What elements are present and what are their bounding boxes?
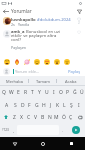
button[interactable]: Ş [68, 99, 75, 111]
button[interactable]: Backspace [74, 111, 85, 123]
staticText: P [66, 89, 70, 96]
button[interactable]: Ü [78, 86, 85, 99]
button[interactable]: amk_a [0, 29, 85, 53]
staticText: K [56, 102, 60, 109]
staticText: S [14, 102, 17, 109]
staticText: Yorumlar [11, 8, 32, 15]
button[interactable]: C [25, 111, 32, 123]
staticText: A [5, 102, 9, 109]
button[interactable]: Shift [0, 111, 11, 123]
button[interactable]: Ç [67, 111, 74, 123]
staticText: X [20, 114, 23, 121]
button[interactable]: R [22, 86, 29, 99]
button[interactable]: React [62, 57, 72, 66]
button[interactable]: B [39, 111, 46, 123]
staticText: I [53, 89, 55, 96]
button[interactable]: Yorum ekle... [13, 66, 67, 76]
button[interactable]: M [53, 111, 60, 123]
staticText: J [50, 102, 52, 109]
button[interactable]: React [22, 57, 32, 66]
button[interactable]: Ğ [71, 86, 78, 99]
staticText: Paylaşım [11, 45, 26, 50]
staticText: . [62, 128, 64, 133]
button[interactable]: G [33, 99, 40, 111]
staticText: Merhaba [6, 79, 23, 84]
staticText: V [34, 114, 38, 121]
staticText: Q [2, 89, 6, 96]
staticText: Yorum ekle... [15, 69, 40, 74]
button[interactable]: T [29, 86, 36, 99]
staticText: M [54, 114, 59, 121]
button[interactable]: J [47, 99, 54, 111]
button[interactable]: Send [67, 123, 85, 137]
button[interactable]: K [54, 99, 61, 111]
button[interactable]: Filter [73, 6, 85, 16]
button[interactable]: Q [0, 86, 8, 99]
button[interactable]: H [40, 99, 47, 111]
button[interactable]: React [42, 57, 52, 66]
staticText: #dolukdum-2024 [37, 17, 71, 23]
button[interactable]: D [19, 99, 26, 111]
button[interactable]: React [32, 57, 42, 66]
button[interactable]: React [12, 57, 22, 66]
button[interactable]: Like [75, 30, 83, 38]
button[interactable]: E [15, 86, 22, 99]
button[interactable]: X [18, 111, 25, 123]
button[interactable]: W [8, 86, 15, 99]
staticText: Yanıtla [18, 22, 30, 27]
button[interactable]: Home [29, 137, 57, 150]
button[interactable]: Ö [60, 111, 67, 123]
button[interactable]: , [11, 123, 17, 137]
button[interactable]: Back [0, 6, 11, 16]
button[interactable]: React [52, 57, 62, 66]
button[interactable]: Y [36, 86, 43, 99]
staticText: L [63, 102, 66, 109]
staticText: Ç [69, 114, 73, 121]
button[interactable]: Z [11, 111, 18, 123]
button[interactable]: S [11, 99, 19, 111]
button[interactable]: O [57, 86, 64, 99]
button[interactable]: I [75, 99, 82, 111]
staticText: Acaba [65, 79, 77, 84]
staticText: O [59, 89, 63, 96]
staticText: , [13, 128, 15, 133]
button[interactable]: P [64, 86, 71, 99]
button[interactable]: Paylaş [67, 69, 82, 74]
button[interactable]: Back [0, 137, 29, 150]
staticText: C [27, 114, 31, 121]
staticText: W [9, 89, 14, 96]
staticText: conl? [11, 37, 22, 43]
staticText: G [35, 102, 39, 109]
staticText: etkilir ve paylaşım altra [11, 33, 57, 39]
button[interactable]: V [32, 111, 39, 123]
staticText: B [41, 114, 45, 121]
button[interactable]: N [46, 111, 53, 123]
button[interactable]: Symbols [0, 123, 11, 137]
button[interactable]: luvnkapollo [0, 16, 85, 28]
staticText: Ö [62, 114, 66, 121]
staticText: ?123 [2, 128, 9, 132]
button[interactable]: Merhaba [0, 76, 29, 86]
staticText: R [24, 89, 28, 96]
staticText: Ş [70, 102, 73, 109]
button[interactable]: I [50, 86, 57, 99]
button[interactable]: React [2, 57, 12, 66]
staticText: 2s [11, 22, 15, 27]
staticText: Ü [80, 89, 84, 96]
button[interactable]: A [3, 99, 11, 111]
staticText: Bonusbool en uzi [26, 29, 60, 35]
button[interactable]: Acaba [57, 76, 85, 86]
button[interactable]: Like [75, 17, 83, 25]
button[interactable]: L [61, 99, 68, 111]
staticText: Paylaş [68, 69, 81, 74]
staticText: Ğ [73, 89, 77, 96]
staticText: luvnkapollo [11, 17, 36, 23]
button[interactable]: Tamam [29, 76, 57, 86]
staticText: I [78, 102, 80, 109]
button[interactable]: F [26, 99, 33, 111]
staticText: amk_a [11, 29, 25, 35]
button[interactable]: U [43, 86, 50, 99]
button[interactable]: Recent apps [57, 137, 85, 150]
